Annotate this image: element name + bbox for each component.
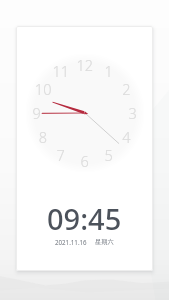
staticText: 星期六 (95, 238, 114, 246)
button[interactable]: Analog clock (16, 26, 153, 271)
staticText: 09:45 (47, 199, 122, 238)
other: Analog clock (26, 54, 144, 172)
staticText: 2021.11.16 (55, 238, 87, 246)
